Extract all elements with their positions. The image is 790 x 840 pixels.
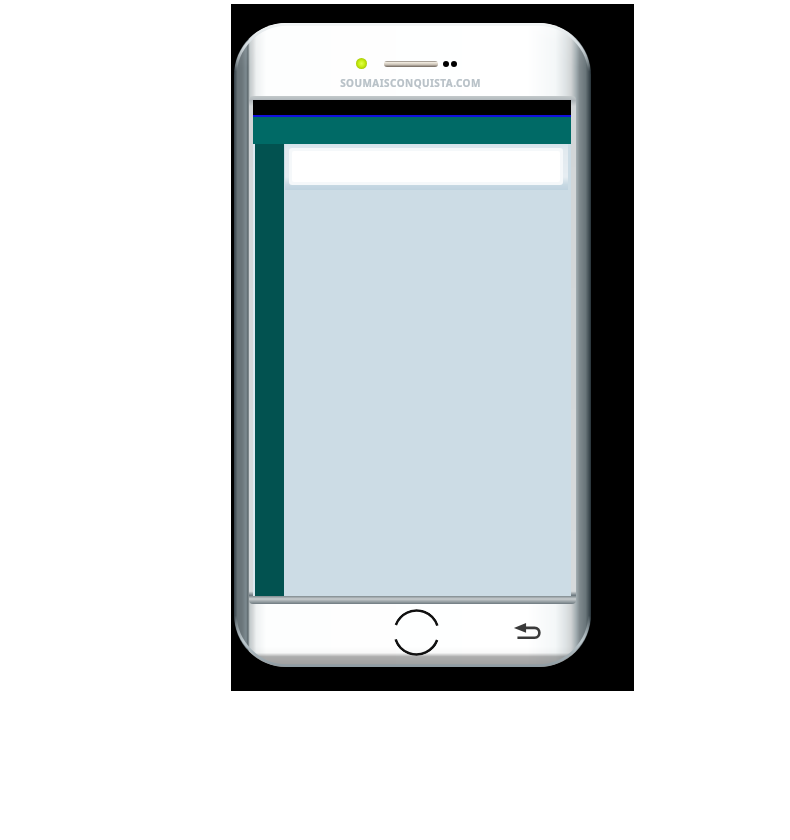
button[interactable]: Home	[393, 609, 440, 656]
button[interactable]: Back	[512, 618, 544, 644]
staticText: SOUMAISCONQUISTA.COM	[340, 76, 481, 90]
